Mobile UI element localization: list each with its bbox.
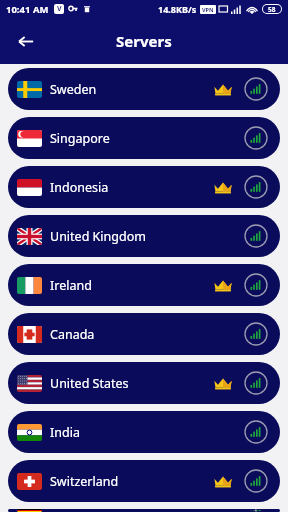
button[interactable]: Ireland [8,264,280,306]
staticText: United States [50,375,129,392]
staticText: Ireland [50,277,92,294]
staticText: Canada [50,326,95,343]
button[interactable]: Switzerland [8,460,280,502]
button[interactable]: Germany [8,509,280,512]
button[interactable]: Sweden [8,68,280,110]
button[interactable]: United States [8,362,280,404]
staticText: V [57,4,62,14]
button[interactable]: Back [10,26,40,56]
staticText: India [50,424,80,441]
button[interactable]: Indonesia [8,166,280,208]
button[interactable]: United Kingdom [8,215,280,257]
staticText: United Kingdom [50,228,146,245]
staticText: Servers [116,31,172,51]
staticText: VPN [202,6,214,13]
staticText: Switzerland [50,473,119,490]
staticText: Singapore [50,130,110,147]
staticText: Indonesia [50,179,109,196]
button[interactable]: Canada [8,313,280,355]
button[interactable]: India [8,411,280,453]
staticText: 58 [268,5,276,13]
staticText: Sweden [50,81,97,98]
staticText: 14.8KB/s [158,3,197,15]
staticText: 10:41 AM [6,3,49,16]
button[interactable]: Singapore [8,117,280,159]
